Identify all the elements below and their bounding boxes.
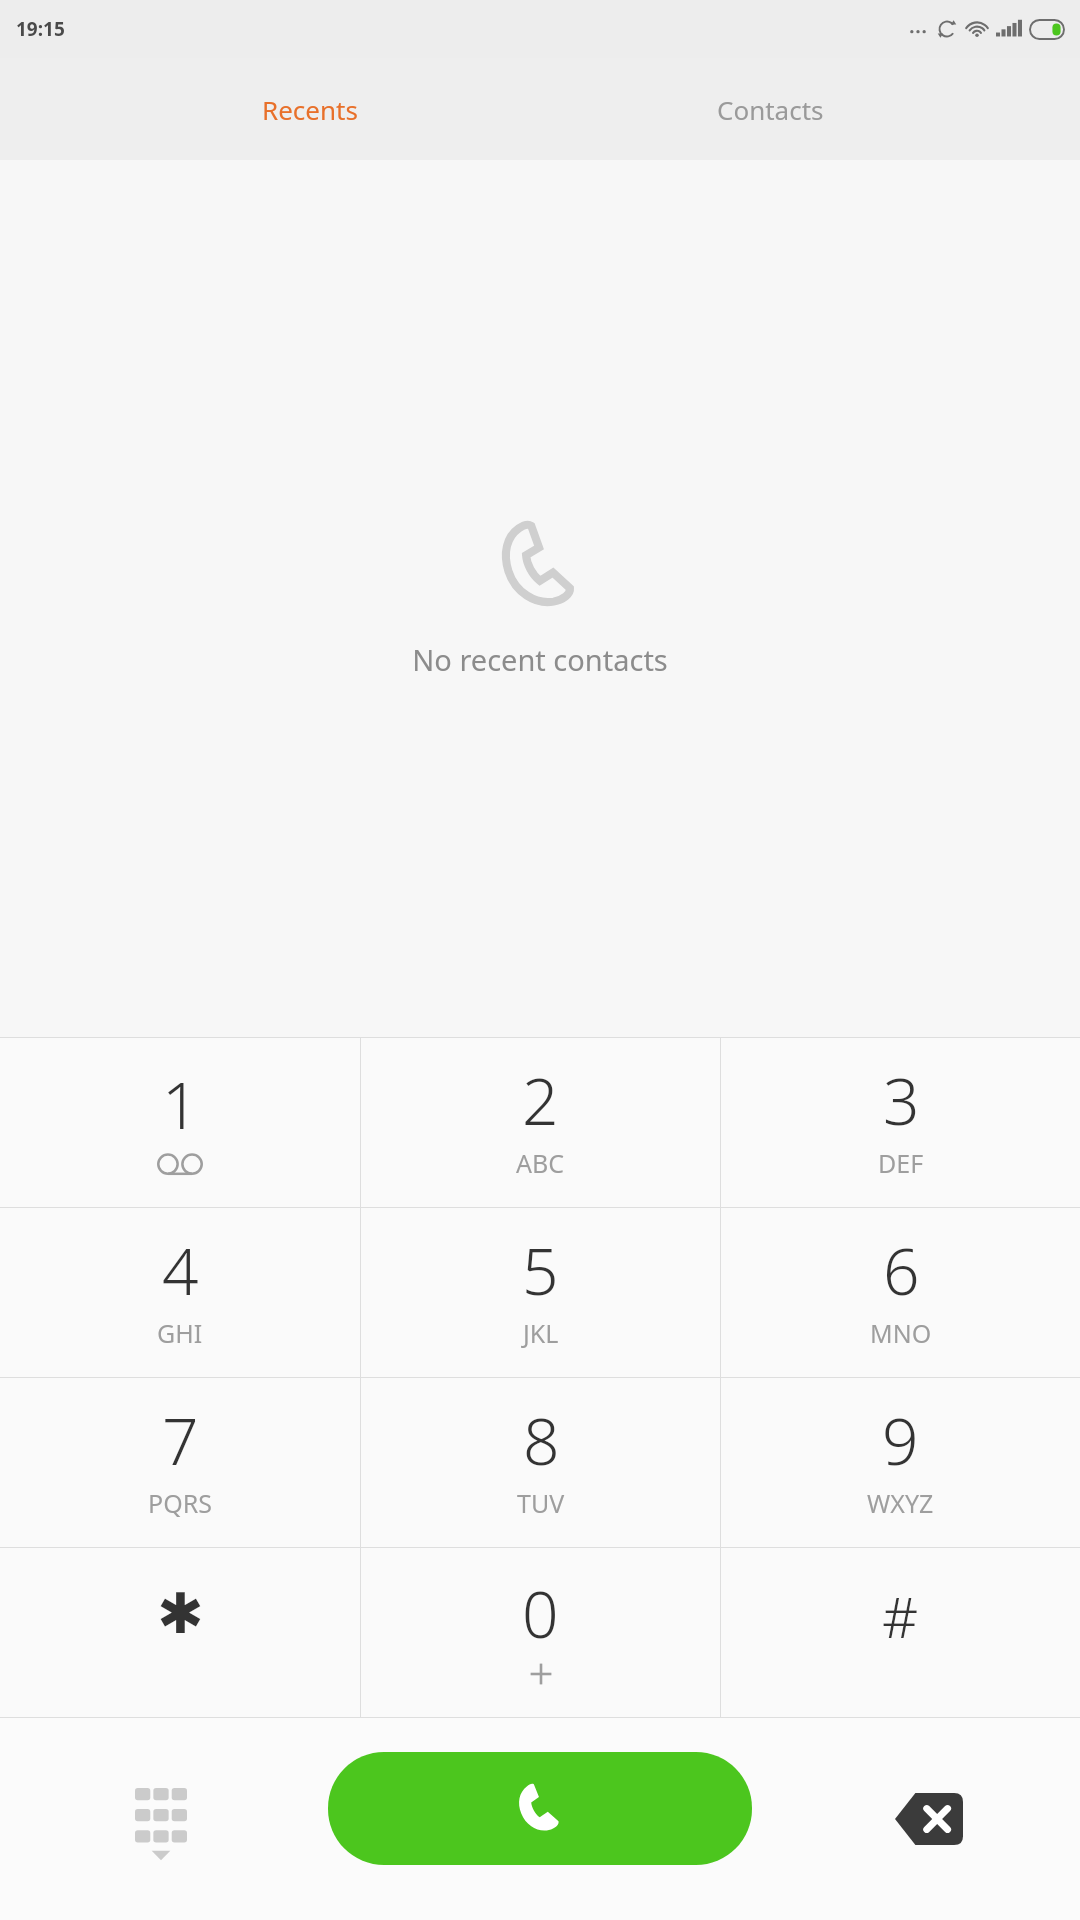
- staticText: ABC: [516, 1146, 565, 1180]
- button[interactable]: ✱: [0, 1548, 360, 1717]
- button[interactable]: #: [721, 1548, 1080, 1717]
- staticText: TUV: [517, 1486, 565, 1520]
- staticText: 1: [162, 1061, 199, 1148]
- staticText: MNO: [870, 1316, 932, 1350]
- button[interactable]: 6: [721, 1208, 1080, 1377]
- staticText: DEF: [878, 1146, 924, 1180]
- staticText: 0: [522, 1570, 559, 1657]
- button[interactable]: Recents: [0, 58, 540, 160]
- staticText: JKL: [523, 1316, 559, 1350]
- button[interactable]: 9: [721, 1378, 1080, 1547]
- staticText: 7: [162, 1397, 199, 1484]
- staticText: 2: [522, 1057, 559, 1144]
- staticText: 8: [523, 1397, 560, 1484]
- button[interactable]: Backspace: [874, 1764, 984, 1874]
- button[interactable]: 8: [361, 1378, 720, 1547]
- staticText: 6: [883, 1227, 920, 1314]
- button[interactable]: 1: [0, 1038, 360, 1207]
- staticText: 9: [882, 1397, 919, 1484]
- staticText: No recent contacts: [412, 640, 668, 679]
- staticText: GHI: [157, 1316, 203, 1350]
- button[interactable]: 5: [361, 1208, 720, 1377]
- staticText: 5: [522, 1227, 559, 1314]
- button[interactable]: 0: [361, 1548, 720, 1717]
- staticText: Contacts: [717, 92, 824, 127]
- staticText: PQRS: [148, 1486, 212, 1520]
- staticText: 3: [883, 1057, 920, 1144]
- button[interactable]: Call: [328, 1752, 752, 1865]
- button[interactable]: 2: [361, 1038, 720, 1207]
- button[interactable]: Contacts: [540, 58, 1080, 160]
- staticText: Recents: [262, 92, 358, 127]
- button[interactable]: 3: [721, 1038, 1080, 1207]
- button[interactable]: 7: [0, 1378, 360, 1547]
- button[interactable]: 4: [0, 1208, 360, 1377]
- button[interactable]: Hide dialpad: [106, 1764, 216, 1874]
- staticText: 19:15: [16, 16, 65, 42]
- staticText: WXYZ: [867, 1486, 934, 1520]
- staticText: 4: [162, 1227, 199, 1314]
- staticText: #: [882, 1578, 919, 1654]
- staticText: ✱: [157, 1581, 204, 1646]
